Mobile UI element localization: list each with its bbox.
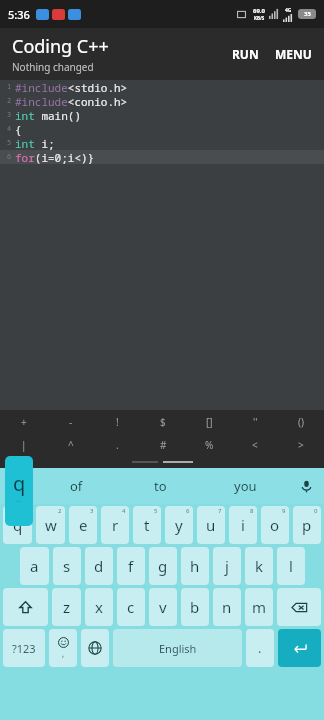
button[interactable]: o xyxy=(261,506,289,544)
staticText: 2 xyxy=(7,96,12,106)
button[interactable]: d xyxy=(85,547,113,585)
button[interactable]: m xyxy=(245,588,273,626)
button[interactable]: r xyxy=(101,506,129,544)
staticText: English xyxy=(159,641,197,656)
button[interactable]: | xyxy=(0,433,47,456)
staticText: ! xyxy=(116,415,119,429)
button[interactable]: ?123 xyxy=(3,629,45,667)
staticText: #include<conio.h> xyxy=(15,94,128,108)
button[interactable]: > xyxy=(278,433,324,456)
staticText: % xyxy=(205,438,214,452)
staticText: of xyxy=(70,477,83,495)
button[interactable]: f xyxy=(117,547,145,585)
button[interactable]: '' xyxy=(232,410,278,433)
button[interactable]: to xyxy=(118,468,203,504)
staticText: 35 xyxy=(304,10,311,18)
button[interactable]: b xyxy=(181,588,209,626)
button[interactable]: a xyxy=(20,547,49,585)
staticText: z xyxy=(63,597,71,617)
staticText: RUN xyxy=(232,46,259,62)
button[interactable]: < xyxy=(232,433,278,456)
staticText: | xyxy=(21,438,27,452)
button[interactable]: Backspace xyxy=(277,588,321,626)
staticText: b xyxy=(190,597,200,617)
button[interactable]: z xyxy=(52,588,81,626)
button[interactable]: + xyxy=(0,410,47,433)
staticText: you xyxy=(234,477,257,495)
staticText: 3 xyxy=(7,110,12,120)
button[interactable]: s xyxy=(53,547,81,585)
staticText: < xyxy=(252,438,258,452)
button[interactable]: q xyxy=(3,506,32,544)
button[interactable]: $ xyxy=(140,410,186,433)
staticText: 7 xyxy=(218,507,222,515)
button[interactable]: MENU xyxy=(269,34,324,74)
button[interactable]: n xyxy=(213,588,241,626)
button[interactable]: Change language xyxy=(81,629,109,667)
button[interactable]: ! xyxy=(94,410,140,433)
staticText: 4G xyxy=(285,7,292,14)
staticText: p xyxy=(302,515,312,535)
button[interactable]: p xyxy=(293,506,321,544)
staticText: int i; xyxy=(15,136,55,150)
button[interactable]: Emoji xyxy=(49,629,77,667)
button[interactable]: w xyxy=(36,506,65,544)
staticText: u xyxy=(206,515,216,535)
button[interactable]: Shift xyxy=(3,588,48,626)
staticText: 5 xyxy=(7,138,12,148)
staticText: f xyxy=(128,556,134,576)
button[interactable]: x xyxy=(85,588,113,626)
button[interactable]: y xyxy=(165,506,193,544)
button[interactable]: j xyxy=(213,547,241,585)
staticText: c xyxy=(127,597,135,617)
button[interactable]: g xyxy=(149,547,177,585)
staticText: int main() xyxy=(15,108,81,122)
staticText: 3 xyxy=(90,507,94,515)
button[interactable]: Voice input xyxy=(288,468,324,504)
staticText: n xyxy=(222,597,232,617)
staticText: . xyxy=(258,639,262,657)
button[interactable]: . xyxy=(94,433,140,456)
staticText: 6 xyxy=(186,507,190,515)
button[interactable]: () xyxy=(278,410,324,433)
button[interactable]: - xyxy=(47,410,94,433)
staticText: h xyxy=(190,556,200,576)
staticText: v xyxy=(159,597,167,617)
button[interactable]: k xyxy=(245,547,273,585)
button[interactable]: . xyxy=(246,629,274,667)
button[interactable]: of xyxy=(34,468,118,504)
button[interactable]: i xyxy=(229,506,257,544)
button[interactable]: you xyxy=(203,468,288,504)
staticText: 8 xyxy=(250,507,254,515)
staticText: m xyxy=(252,597,267,617)
staticText: i xyxy=(241,515,245,535)
staticText: Nothing changed xyxy=(12,60,94,74)
staticText: j xyxy=(225,556,229,576)
staticText: to xyxy=(154,477,167,495)
staticText: o xyxy=(270,515,280,535)
button[interactable]: c xyxy=(117,588,145,626)
button[interactable]: e xyxy=(69,506,97,544)
button[interactable]: u xyxy=(197,506,225,544)
button[interactable]: h xyxy=(181,547,209,585)
button[interactable]: t xyxy=(133,506,161,544)
staticText: 2 xyxy=(58,507,62,515)
button[interactable]: ^ xyxy=(47,433,94,456)
button[interactable]: [] xyxy=(186,410,232,433)
staticText: () xyxy=(298,415,304,429)
staticText: ^ xyxy=(68,438,74,452)
button[interactable]: RUN xyxy=(222,34,269,74)
staticText: { xyxy=(15,122,22,136)
staticText: 9 xyxy=(282,507,286,515)
button[interactable]: # xyxy=(140,433,186,456)
staticText: k xyxy=(255,556,264,576)
staticText: ?123 xyxy=(12,641,36,656)
button[interactable]: English xyxy=(113,629,242,667)
button[interactable]: l xyxy=(277,547,305,585)
staticText: 4 xyxy=(122,507,126,515)
button[interactable]: v xyxy=(149,588,177,626)
staticText: > xyxy=(298,438,304,452)
button[interactable]: % xyxy=(186,433,232,456)
button[interactable]: Enter xyxy=(278,629,321,667)
